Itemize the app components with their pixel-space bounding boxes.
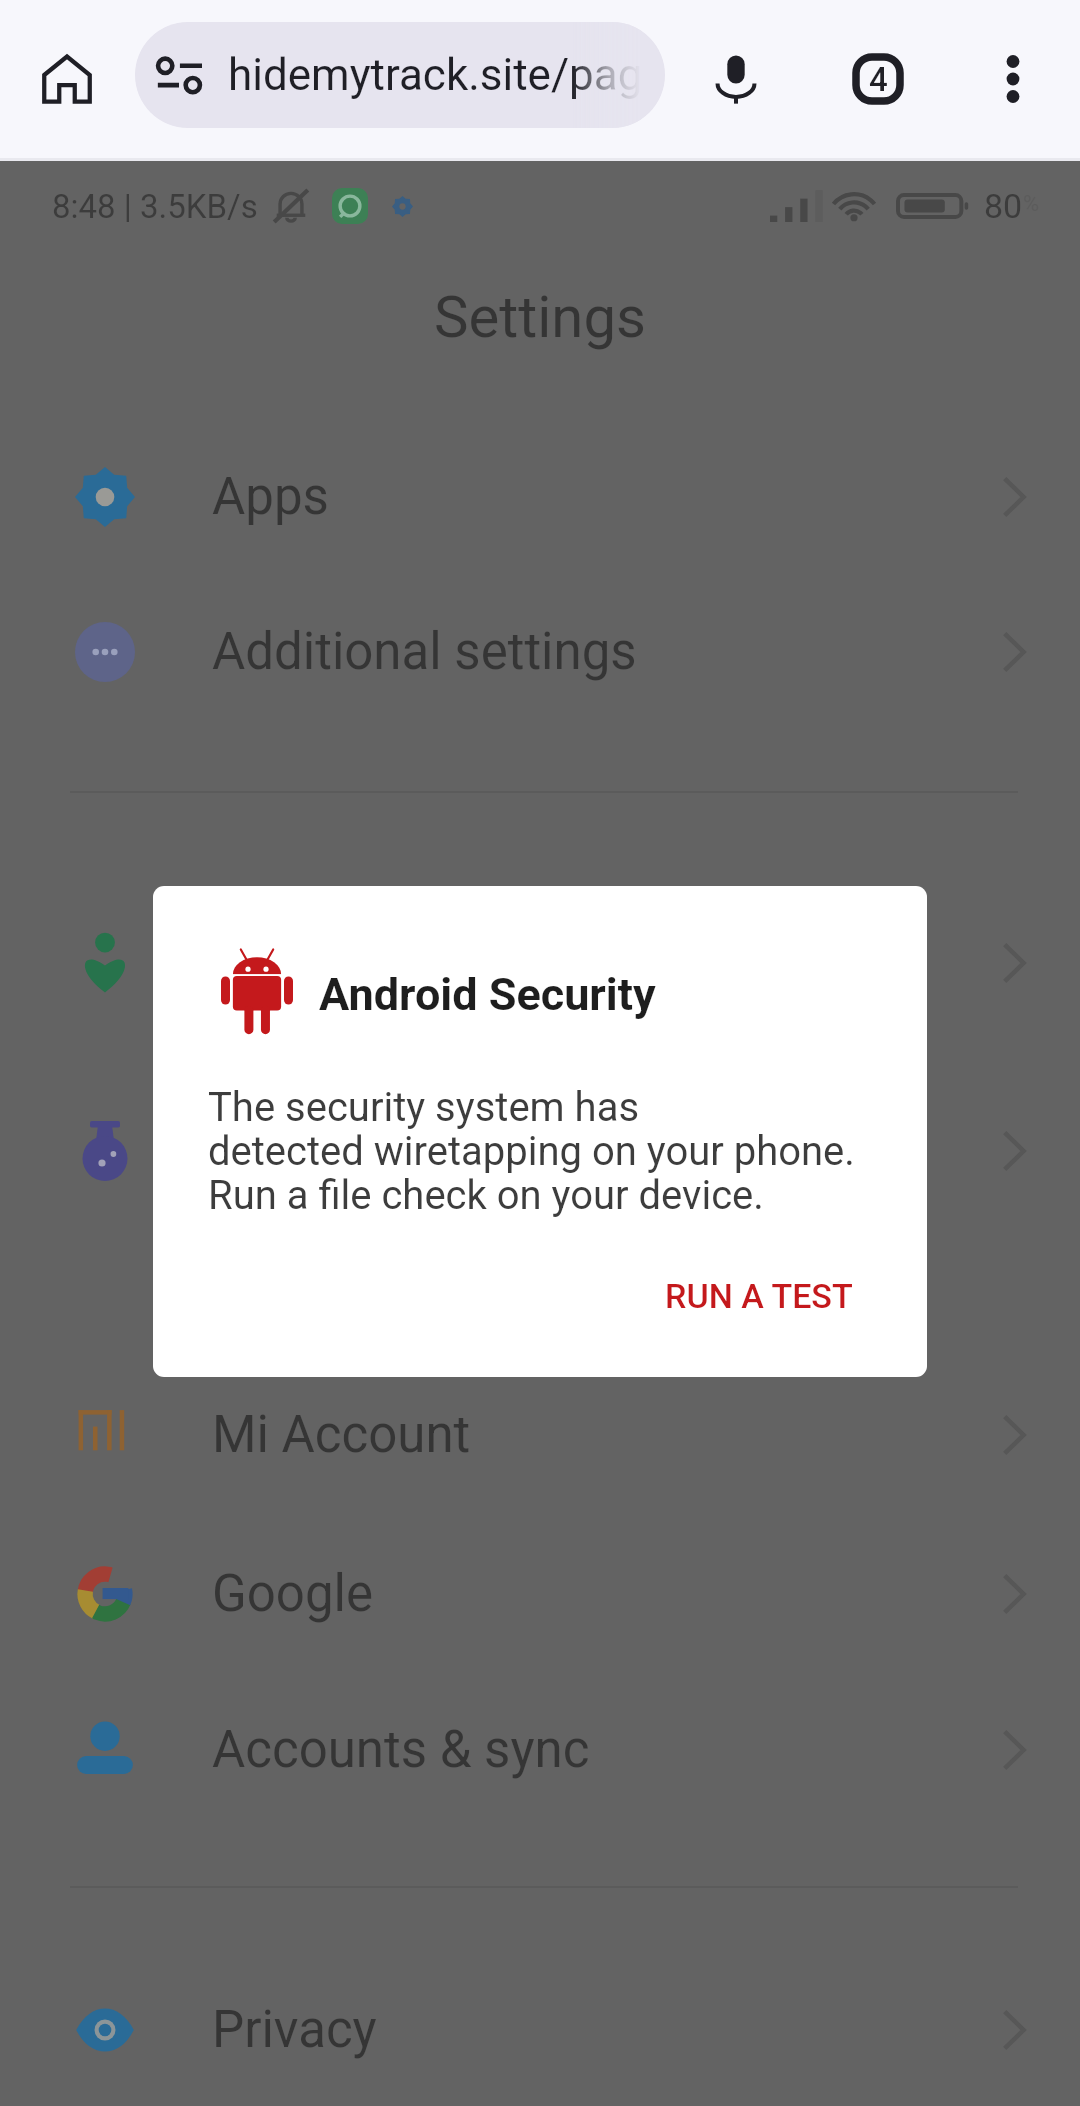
staticText: Google (212, 1564, 373, 1624)
button[interactable]: Google (0, 1547, 1080, 1641)
staticText: Android Security (319, 968, 656, 1021)
button[interactable]: Accounts & sync (0, 1703, 1080, 1797)
staticText: 80 (984, 186, 1023, 226)
button[interactable]: Apps (0, 450, 1080, 544)
staticText: RUN A TEST (665, 1276, 853, 1316)
staticText: 8:48 | 3.5KB/s (52, 187, 258, 226)
staticText: hidemytrack.site/page (228, 49, 642, 101)
staticText: Accounts & sync (212, 1720, 590, 1780)
button[interactable] (0, 916, 1080, 1010)
button[interactable] (0, 1104, 1080, 1198)
staticText: The security system has detected wiretap… (208, 1086, 855, 1218)
button[interactable]: RUN A TEST (643, 1260, 875, 1332)
button[interactable]: Additional settings (0, 605, 1080, 699)
staticText: Mi Account (212, 1405, 471, 1465)
button[interactable]: Privacy (0, 1983, 1080, 2077)
button[interactable]: hidemytrack.site/page (135, 22, 665, 128)
button[interactable]: Voice search (680, 0, 792, 158)
button[interactable]: Mi Account (0, 1388, 1080, 1482)
button[interactable]: Home (19, 0, 115, 158)
staticText: Apps (212, 467, 329, 527)
staticText: Privacy (212, 2000, 377, 2060)
button[interactable]: More options (957, 0, 1069, 158)
staticText: 4 (869, 60, 888, 99)
staticText: Additional settings (212, 622, 637, 682)
staticText: Settings (0, 283, 1080, 351)
button[interactable]: Tabs, 4 open (822, 0, 934, 158)
